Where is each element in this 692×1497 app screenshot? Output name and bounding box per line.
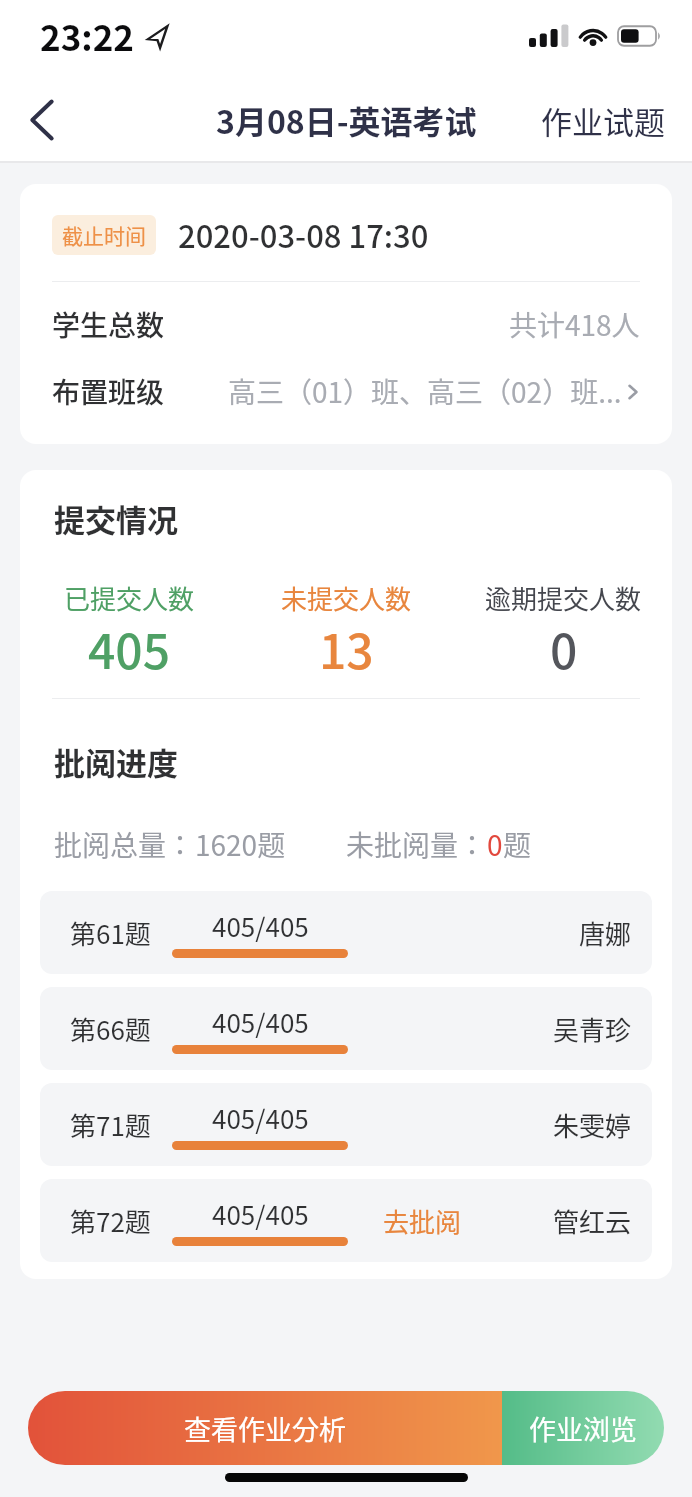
staticText: 405/405: [212, 907, 309, 945]
staticText: 高三（01）班、高三（02）班...: [228, 371, 622, 412]
staticText: 截止时间: [62, 220, 146, 250]
staticText: 批阅进度: [54, 739, 178, 784]
staticText: 0: [550, 613, 578, 683]
staticText: 第72题: [70, 1202, 151, 1240]
staticText: 学生总数: [52, 304, 165, 345]
staticText: 未提交人数: [281, 579, 412, 617]
staticText: 405/405: [212, 1195, 309, 1233]
staticText: 第61题: [70, 914, 151, 952]
staticText: 13: [319, 613, 374, 683]
button[interactable]: 布置班级: [52, 371, 640, 412]
staticText: 第71题: [70, 1106, 151, 1144]
staticText: 布置班级: [52, 371, 165, 412]
staticText: 逾期提交人数: [485, 579, 642, 617]
staticText: 题: [503, 824, 532, 865]
button[interactable]: 第72题: [40, 1179, 652, 1262]
staticText: 去批阅: [383, 1202, 462, 1240]
staticText: 查看作业分析: [184, 1409, 346, 1448]
button[interactable]: 第66题: [40, 987, 652, 1070]
staticText: 2020-03-08 17:30: [178, 212, 429, 257]
staticText: 批阅总量：: [54, 824, 195, 865]
button[interactable]: 查看作业分析: [28, 1391, 502, 1465]
staticText: 0: [487, 824, 503, 865]
button[interactable]: [20, 98, 64, 142]
button[interactable]: 作业试题: [541, 98, 665, 143]
button[interactable]: 作业浏览: [502, 1391, 664, 1465]
staticText: 共计418人: [509, 304, 640, 345]
staticText: 唐娜: [579, 914, 632, 952]
staticText: 1620题: [195, 824, 286, 865]
staticText: 405: [88, 613, 171, 683]
staticText: 第66题: [70, 1010, 151, 1048]
button[interactable]: 第61题: [40, 891, 652, 974]
staticText: 吴青珍: [553, 1010, 632, 1048]
staticText: 未批阅量：: [346, 824, 487, 865]
staticText: 405/405: [212, 1003, 309, 1041]
staticText: 405/405: [212, 1099, 309, 1137]
staticText: 3月08日-英语考试: [216, 97, 477, 143]
staticText: 朱雯婷: [553, 1106, 632, 1144]
button[interactable]: 去批阅: [383, 1202, 462, 1240]
button[interactable]: 第71题: [40, 1083, 652, 1166]
staticText: 作业试题: [541, 98, 665, 143]
staticText: 作业浏览: [529, 1409, 637, 1448]
staticText: 管红云: [553, 1202, 632, 1240]
staticText: 已提交人数: [64, 579, 195, 617]
staticText: 提交情况: [54, 496, 178, 541]
staticText: 23:22: [40, 10, 134, 61]
